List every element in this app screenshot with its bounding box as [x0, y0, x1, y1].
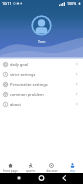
staticText: sports: [26, 169, 35, 173]
button[interactable]: Personalize settings: [0, 79, 83, 89]
staticText: front page: [3, 169, 18, 173]
staticText: 10:11: [2, 1, 12, 6]
staticText: 100%: [67, 1, 77, 6]
staticText: Tom: [38, 39, 46, 44]
staticText: daily goal: [10, 62, 29, 67]
staticText: common problem: [10, 92, 44, 97]
button[interactable]: common problem: [0, 89, 83, 99]
staticText: strict settings: [10, 72, 36, 77]
staticText: about: [10, 102, 22, 107]
button[interactable]: strict settings: [0, 69, 83, 79]
staticText: Personalize settings: [10, 82, 48, 87]
button[interactable]: my: [62, 162, 83, 173]
button[interactable]: discover: [41, 162, 62, 173]
button[interactable]: front page: [0, 162, 20, 173]
staticText: discover: [46, 169, 58, 173]
button[interactable]: Profile avatar: [31, 15, 52, 36]
button[interactable]: daily goal: [0, 59, 83, 69]
button[interactable]: sports: [20, 162, 41, 173]
button[interactable]: about: [0, 99, 83, 109]
staticText: my: [70, 169, 75, 173]
